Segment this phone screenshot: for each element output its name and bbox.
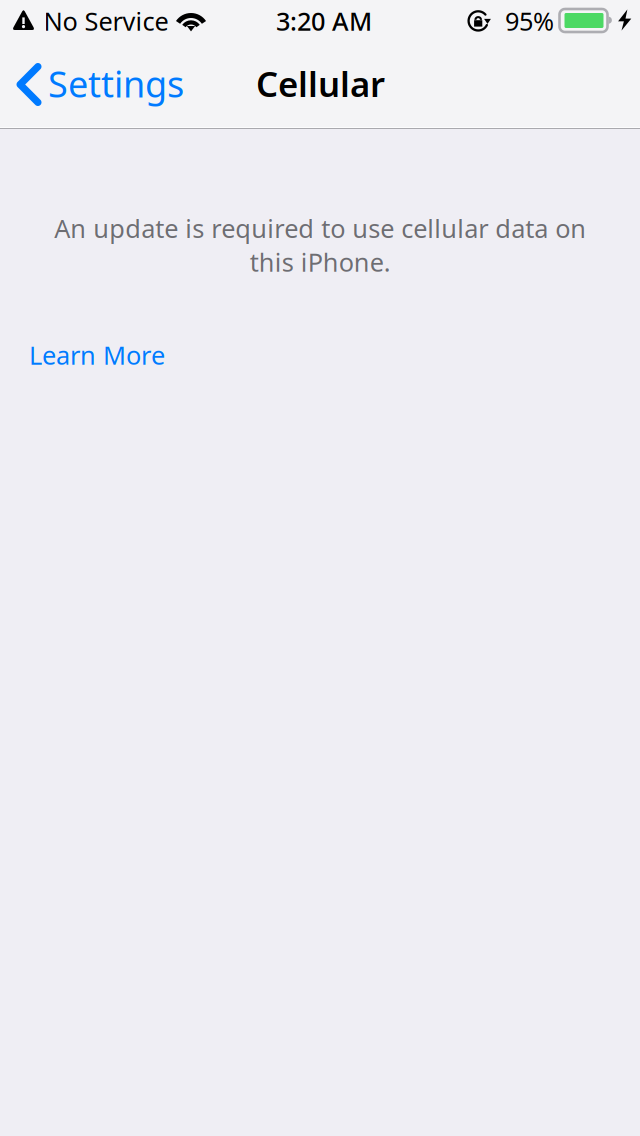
button[interactable]: Learn More bbox=[0, 330, 210, 380]
staticText: 3:20 AM bbox=[276, 4, 372, 38]
staticText: 95% bbox=[505, 4, 554, 38]
staticText: Settings bbox=[48, 60, 184, 107]
staticText: Learn More bbox=[29, 338, 165, 372]
button[interactable]: Settings bbox=[0, 41, 190, 127]
staticText: An update is required to use cellular da… bbox=[54, 211, 586, 279]
staticText: No Service bbox=[43, 4, 168, 38]
staticText: Cellular bbox=[256, 60, 385, 106]
